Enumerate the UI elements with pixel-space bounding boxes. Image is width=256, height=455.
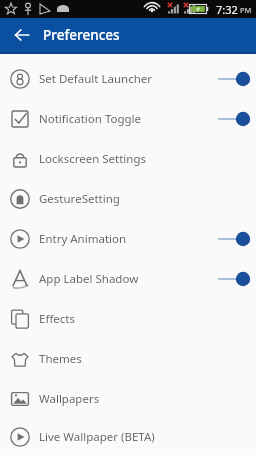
button[interactable]: Notification Toggle: [0, 99, 256, 139]
button[interactable]: Entry Animation switch: [212, 224, 256, 254]
staticText: Wallpapers: [39, 391, 244, 407]
staticText: Themes: [39, 351, 244, 367]
button[interactable]: Set Default Launcher: [0, 59, 256, 99]
button[interactable]: Lockscreen Settings: [0, 139, 256, 179]
button[interactable]: Wallpapers: [0, 379, 256, 419]
button[interactable]: Set Default Launcher switch: [212, 64, 256, 94]
staticText: 7:32: [216, 2, 238, 17]
staticText: Preferences: [43, 26, 120, 44]
button[interactable]: App Label Shadow: [0, 259, 256, 299]
staticText: Effects: [39, 311, 244, 327]
staticText: Entry Animation: [39, 231, 212, 247]
button[interactable]: Themes: [0, 339, 256, 379]
button[interactable]: Live Wallpaper (BETA): [0, 419, 256, 455]
button[interactable]: Notification Toggle switch: [212, 104, 256, 134]
button[interactable]: GestureSetting: [0, 179, 256, 219]
button[interactable]: Entry Animation: [0, 219, 256, 259]
staticText: Live Wallpaper (BETA): [39, 429, 244, 445]
staticText: App Label Shadow: [39, 271, 212, 287]
staticText: Set Default Launcher: [39, 71, 212, 87]
staticText: Lockscreen Settings: [39, 151, 244, 167]
button[interactable]: App Label Shadow switch: [212, 264, 256, 294]
staticText: GestureSetting: [39, 191, 244, 207]
button[interactable]: Back: [9, 22, 35, 48]
staticText: PM: [240, 5, 252, 15]
staticText: Notification Toggle: [39, 111, 212, 127]
button[interactable]: Effects: [0, 299, 256, 339]
